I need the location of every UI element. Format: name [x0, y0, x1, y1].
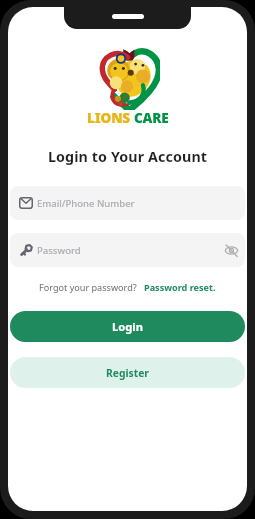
button[interactable]: Register: [10, 357, 245, 388]
staticText: Login: [112, 319, 143, 334]
staticText: Password reset.: [144, 281, 216, 293]
button[interactable]: Email/Phone Number: [10, 186, 245, 220]
button[interactable]: Login: [10, 311, 245, 342]
button[interactable]: Password reset.: [144, 281, 216, 293]
staticText: Register: [106, 366, 149, 380]
staticText: CARE: [134, 108, 169, 127]
staticText: Forgot your password?: [39, 281, 137, 293]
button[interactable]: Password: [10, 233, 245, 267]
staticText: Password: [37, 244, 81, 257]
staticText: LIONS: [87, 108, 130, 127]
staticText: Login to Your Account: [8, 147, 247, 166]
staticText: Email/Phone Number: [37, 197, 135, 210]
button[interactable]: Show password: [224, 243, 239, 258]
